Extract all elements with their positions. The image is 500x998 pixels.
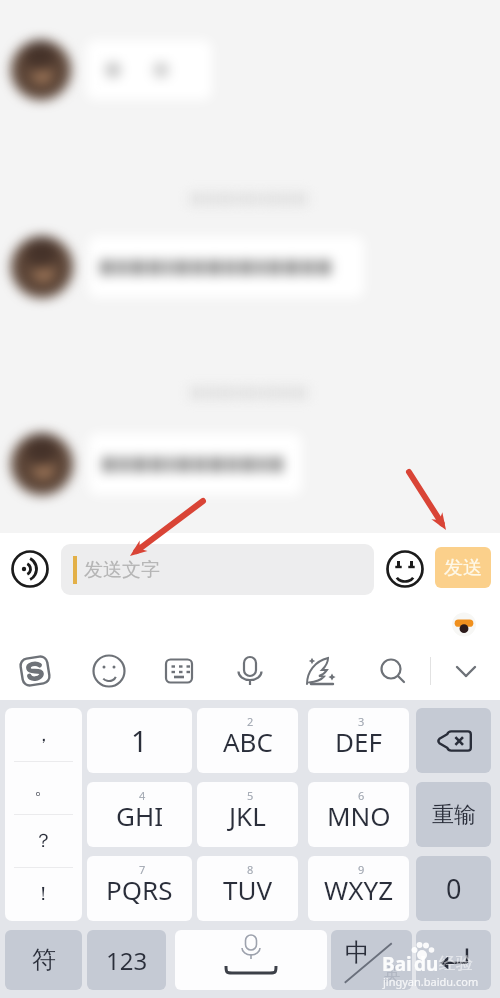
staticText: 发送 — [444, 556, 482, 580]
staticText: 8 — [247, 862, 254, 877]
staticText: 3 — [358, 714, 365, 729]
button[interactable]: WXYZ — [308, 856, 409, 921]
button[interactable]: 0 — [416, 856, 491, 921]
staticText: ？ — [34, 829, 53, 853]
staticText: 1 — [131, 721, 148, 760]
staticText: 2 — [247, 714, 254, 729]
button[interactable]: 123 — [87, 930, 166, 990]
staticText: 9 — [358, 862, 365, 877]
button[interactable]: 中英切换 — [331, 930, 412, 990]
staticText: 中 — [345, 937, 370, 968]
button[interactable]: Search — [372, 650, 414, 692]
button[interactable]: Enter — [416, 930, 491, 990]
button[interactable]: 发送 — [435, 547, 491, 588]
button[interactable]: DEF — [308, 708, 409, 773]
button[interactable]: Hide keyboard — [445, 650, 487, 692]
staticText: GHI — [116, 798, 164, 833]
button[interactable]: ， — [5, 708, 82, 761]
staticText: 重输 — [432, 801, 476, 829]
staticText: JKL — [229, 798, 266, 833]
button[interactable]: TUV — [197, 856, 298, 921]
staticText: 英 — [384, 964, 401, 985]
staticText: TUV — [223, 872, 273, 907]
button[interactable]: 1 — [87, 708, 192, 773]
staticText: du — [414, 951, 439, 977]
button[interactable]: 重输 — [416, 782, 491, 847]
button[interactable]: Space — [175, 930, 327, 990]
staticText: WXYZ — [324, 872, 394, 907]
button[interactable]: ！ — [5, 867, 82, 920]
staticText: 符 — [32, 945, 56, 975]
button[interactable]: Emoji — [385, 549, 425, 589]
button[interactable]: 发送文字 — [61, 544, 374, 595]
staticText: DEF — [335, 724, 382, 759]
button[interactable]: Backspace — [416, 708, 491, 773]
staticText: 经验 — [439, 953, 473, 974]
button[interactable]: Emoji — [88, 650, 130, 692]
button[interactable]: MNO — [308, 782, 409, 847]
button[interactable]: Assistant — [450, 610, 478, 638]
button[interactable]: ？ — [5, 814, 82, 867]
staticText: ， — [34, 723, 53, 747]
staticText: 5 — [247, 788, 254, 803]
button[interactable]: Voice — [229, 650, 271, 692]
button[interactable]: 符 — [5, 930, 82, 990]
staticText: MNO — [327, 798, 391, 833]
staticText: jingyan.baidu.com — [383, 974, 479, 989]
staticText: 发送文字 — [84, 558, 160, 582]
staticText: 0 — [446, 870, 462, 907]
staticText: ABC — [223, 724, 273, 759]
button[interactable]: GHI — [87, 782, 192, 847]
staticText: 7 — [139, 862, 146, 877]
button[interactable]: PQRS — [87, 856, 192, 921]
staticText: 4 — [139, 788, 146, 803]
staticText: PQRS — [106, 872, 173, 907]
staticText: 123 — [106, 944, 148, 977]
button[interactable]: Handwriting — [299, 650, 341, 692]
staticText: ！ — [34, 882, 53, 906]
staticText: Bai — [382, 951, 412, 977]
button[interactable]: ABC — [197, 708, 298, 773]
button[interactable]: JKL — [197, 782, 298, 847]
button[interactable]: Voice input — [9, 548, 51, 590]
staticText: 。 — [34, 776, 53, 800]
staticText: 6 — [358, 788, 365, 803]
button[interactable]: 。 — [5, 761, 82, 814]
button[interactable]: Sogou menu — [14, 650, 56, 692]
button[interactable]: Keyboard — [158, 650, 200, 692]
